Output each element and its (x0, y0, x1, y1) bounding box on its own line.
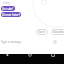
button[interactable]: Sure! (36, 29, 48, 35)
staticText: So cute! (2, 7, 14, 11)
staticText: Today (3, 1, 11, 5)
button[interactable]: Dinner later? (1, 12, 21, 17)
button[interactable]: Back (3, 51, 11, 59)
staticText: Type a message (1, 40, 22, 44)
button[interactable]: Send (53, 40, 57, 44)
button[interactable]: Home (26, 51, 34, 59)
staticText: Sounds (53, 30, 64, 34)
button[interactable]: Sounds (51, 29, 64, 35)
staticText: Dinner later? (2, 13, 21, 17)
button[interactable]: Recents (49, 51, 57, 59)
button[interactable]: So cute! (1, 6, 15, 11)
staticText: Sure! (38, 30, 46, 34)
